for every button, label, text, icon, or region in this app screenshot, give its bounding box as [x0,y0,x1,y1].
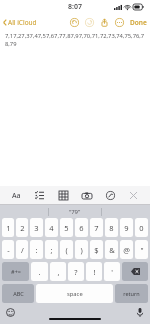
button[interactable]: 0 [135,218,148,237]
staticText: ) [80,245,83,255]
button[interactable]: , [50,262,66,281]
staticText: $ [94,245,99,255]
button[interactable]: 8 [105,218,118,237]
staticText: “79” [69,208,81,216]
button[interactable]: 6 [75,218,88,237]
button[interactable]: Share [98,16,111,29]
button[interactable]: Dictation [133,306,146,319]
staticText: - [7,245,10,255]
button[interactable]: Hide keyboard [126,188,141,203]
staticText: & [109,245,115,255]
button[interactable]: More options [113,16,126,29]
button[interactable]: : [30,240,43,259]
button[interactable]: All iCloud [0,15,39,29]
button[interactable]: Text format [9,188,24,203]
staticText: ( [65,245,68,255]
staticText: 8 [109,223,114,233]
staticText: 9 [124,223,129,233]
staticText: 8:07 [68,2,82,12]
button[interactable]: ) [75,240,88,259]
button[interactable]: ! [86,262,102,281]
button[interactable]: ; [45,240,58,259]
staticText: / [21,245,24,255]
button[interactable]: Emoji [4,306,17,319]
staticText: , [57,267,60,277]
button[interactable]: Undo [68,16,81,29]
button[interactable]: Camera [79,188,94,203]
staticText: 7 [94,223,99,233]
staticText: 2 [20,223,25,233]
staticText: : [35,245,38,255]
staticText: 4 [49,223,54,233]
button[interactable]: #+= [2,262,29,281]
button[interactable]: $ [90,240,103,259]
button[interactable]: Redo [83,16,96,29]
staticText: 5 [64,223,69,233]
staticText: #+= [11,268,21,275]
staticText: ? [74,267,78,277]
button[interactable]: ( [60,240,73,259]
button[interactable]: & [105,240,118,259]
staticText: 1 [6,223,11,233]
button[interactable]: - [2,240,14,259]
button[interactable]: 5 [60,218,73,237]
staticText: 6 [79,223,84,233]
staticText: ABC [13,290,24,297]
button[interactable]: Checklist [32,188,47,203]
button[interactable]: Table [56,188,71,203]
button[interactable]: " [135,240,148,259]
button[interactable]: space [36,284,113,303]
button[interactable]: @ [120,240,133,259]
button[interactable]: 3 [30,218,43,237]
button[interactable]: Markup [103,188,118,203]
button[interactable]: 1 [2,218,14,237]
button[interactable]: Backspace [122,262,148,281]
button[interactable]: / [16,240,28,259]
button[interactable]: ' [104,262,120,281]
button[interactable]: . [31,262,48,281]
button[interactable]: ABC [2,284,34,303]
staticText: ! [93,267,96,277]
staticText: return [123,290,140,297]
button[interactable]: 7 [90,218,103,237]
staticText: 7,17,27,37,47,57,67,77,87,97,70,71,72,73… [5,32,145,48]
staticText: Aa [12,191,21,201]
staticText: " [140,245,144,255]
button[interactable]: 2 [16,218,28,237]
staticText: ' [111,267,113,277]
staticText: All iCloud [8,18,37,27]
button[interactable]: ? [68,262,84,281]
staticText: 3 [34,223,39,233]
staticText: ; [50,245,53,255]
staticText: @ [123,245,130,255]
button[interactable]: 4 [45,218,58,237]
staticText: Done [130,18,147,27]
staticText: . [38,267,41,277]
button[interactable]: Done [127,16,150,29]
button[interactable]: return [115,284,148,303]
staticText: space [67,290,83,298]
button[interactable]: 9 [120,218,133,237]
staticText: 0 [139,223,144,233]
